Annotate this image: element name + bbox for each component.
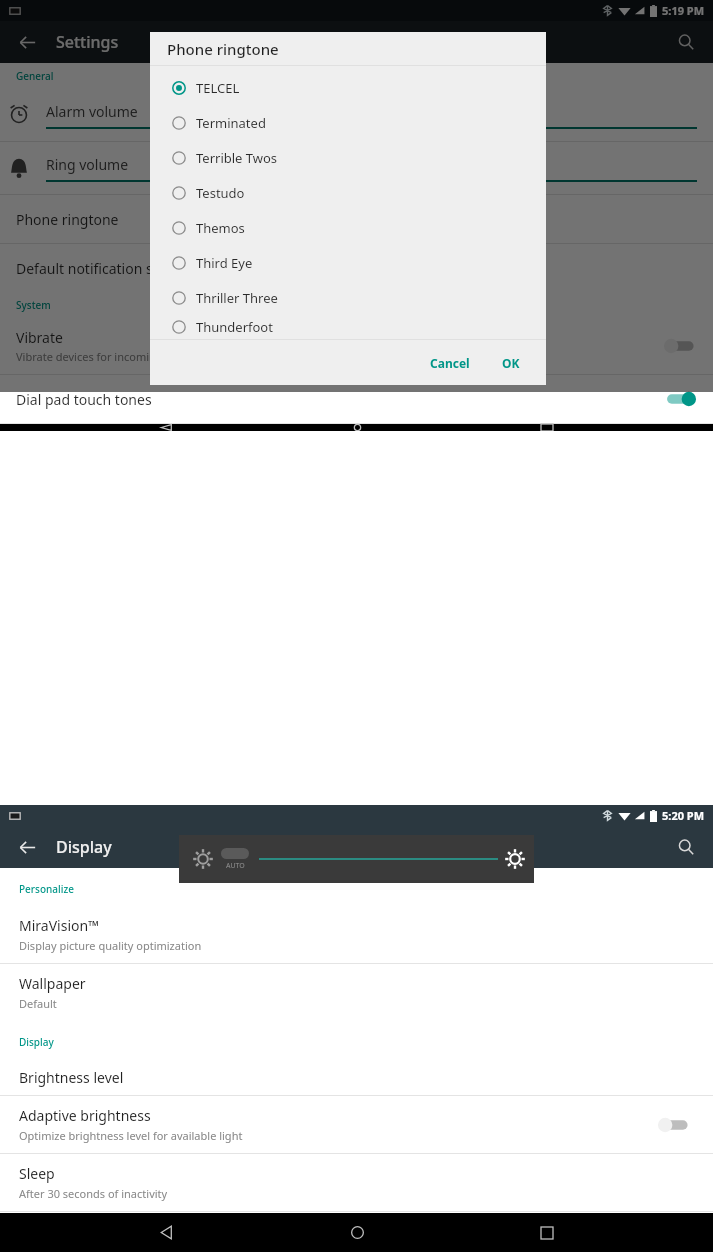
button[interactable]: Cancel: [420, 347, 480, 379]
staticText: Ring volume: [46, 155, 129, 174]
button[interactable]: MiraVision™: [0, 906, 713, 963]
button[interactable]: Third Eye: [150, 245, 546, 280]
staticText: AUTO: [226, 861, 245, 871]
staticText: TELCEL: [196, 79, 240, 97]
button[interactable]: Phone ringtone: [0, 195, 713, 243]
staticText: Brightness level: [19, 1068, 124, 1087]
button[interactable]: Thunderfoot: [150, 315, 546, 339]
button[interactable]: Recents: [523, 1213, 571, 1252]
button[interactable]: Back: [142, 424, 190, 431]
staticText: Thriller Three: [196, 289, 278, 307]
staticText: Default: [19, 996, 57, 1011]
staticText: System: [16, 298, 51, 312]
staticText: 5:19 PM: [662, 3, 705, 18]
button[interactable]: Toggle: [663, 337, 697, 355]
button[interactable]: Home: [333, 1213, 381, 1252]
button[interactable]: Default notification sound: [0, 244, 713, 292]
staticText: General: [16, 69, 54, 83]
staticText: Vibrate devices for incoming calls: [16, 349, 188, 364]
button[interactable]: Testudo: [150, 175, 546, 210]
staticText: Terrible Twos: [196, 149, 278, 167]
button[interactable]: Terrible Twos: [150, 140, 546, 175]
button[interactable]: Alarm volume: [0, 89, 713, 141]
staticText: OK: [502, 355, 520, 371]
staticText: Dial pad touch tones: [16, 390, 152, 409]
staticText: Sleep: [19, 1164, 55, 1183]
staticText: Display picture quality optimization: [19, 938, 202, 953]
staticText: Testudo: [196, 184, 245, 202]
button[interactable]: Adaptive brightness: [0, 1096, 713, 1153]
staticText: Third Eye: [196, 254, 253, 272]
button[interactable]: Recents: [523, 424, 571, 431]
button[interactable]: Wallpaper: [0, 964, 713, 1021]
staticText: After 30 seconds of inactivity: [19, 1186, 168, 1201]
button[interactable]: Vibrate: [0, 318, 713, 374]
button[interactable]: Brightness level: [0, 1059, 713, 1095]
staticText: Cancel: [430, 355, 470, 371]
button[interactable]: Back: [12, 832, 42, 862]
button[interactable]: Home: [333, 424, 381, 431]
staticText: Alarm volume: [46, 102, 138, 121]
button[interactable]: OK: [492, 347, 530, 379]
staticText: Adaptive brightness: [19, 1106, 151, 1125]
staticText: Vibrate: [16, 328, 63, 347]
staticText: Daydream: [19, 1212, 88, 1231]
staticText: MiraVision™: [19, 916, 99, 935]
button[interactable]: Sleep: [0, 1154, 713, 1211]
staticText: Display: [19, 1035, 54, 1049]
staticText: Terminated: [196, 114, 266, 132]
staticText: Thunderfoot: [196, 318, 273, 336]
button[interactable]: TELCEL: [150, 70, 546, 105]
button[interactable]: Back: [142, 1213, 190, 1252]
button[interactable]: Auto brightness: [221, 848, 249, 859]
other: Brightness: [193, 849, 213, 869]
button[interactable]: Search: [671, 832, 701, 862]
staticText: Optimize brightness level for available …: [19, 1128, 243, 1143]
staticText: 5:20 PM: [662, 808, 705, 823]
staticText: Themos: [196, 219, 245, 237]
button[interactable]: Ring volume: [0, 142, 713, 194]
button[interactable]: Dial pad touch tones: [0, 375, 713, 423]
button[interactable]: Terminated: [150, 105, 546, 140]
staticText: Default notification sound: [16, 259, 188, 278]
staticText: Phone ringtone: [16, 210, 119, 229]
staticText: Personalize: [19, 882, 74, 896]
staticText: Phone ringtone: [167, 39, 279, 59]
button[interactable]: Search: [671, 27, 701, 57]
staticText: Display: [56, 836, 112, 858]
button[interactable]: Themos: [150, 210, 546, 245]
button[interactable]: Toggle: [663, 390, 697, 408]
button[interactable]: Thriller Three: [150, 280, 546, 315]
button[interactable]: Toggle: [657, 1116, 691, 1134]
button[interactable]: Back: [12, 27, 42, 57]
staticText: Settings: [56, 31, 119, 53]
staticText: Wallpaper: [19, 974, 86, 993]
button[interactable]: Daydream: [0, 1212, 713, 1242]
